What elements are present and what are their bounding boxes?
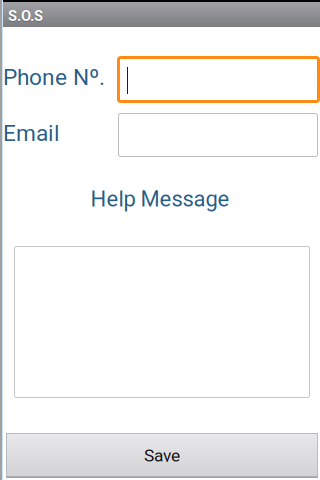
staticText: Email xyxy=(3,120,60,147)
button[interactable]: Email xyxy=(118,113,317,156)
staticText: Save xyxy=(144,445,180,466)
staticText: Phone Nº. xyxy=(3,64,105,91)
button[interactable]: Phone number xyxy=(118,57,318,101)
button[interactable]: Save xyxy=(6,433,317,477)
staticText: Help Message xyxy=(90,186,229,212)
staticText: S.O.S xyxy=(8,8,43,26)
button[interactable]: Help message xyxy=(14,246,309,397)
staticText: S.O.S xyxy=(8,7,43,25)
